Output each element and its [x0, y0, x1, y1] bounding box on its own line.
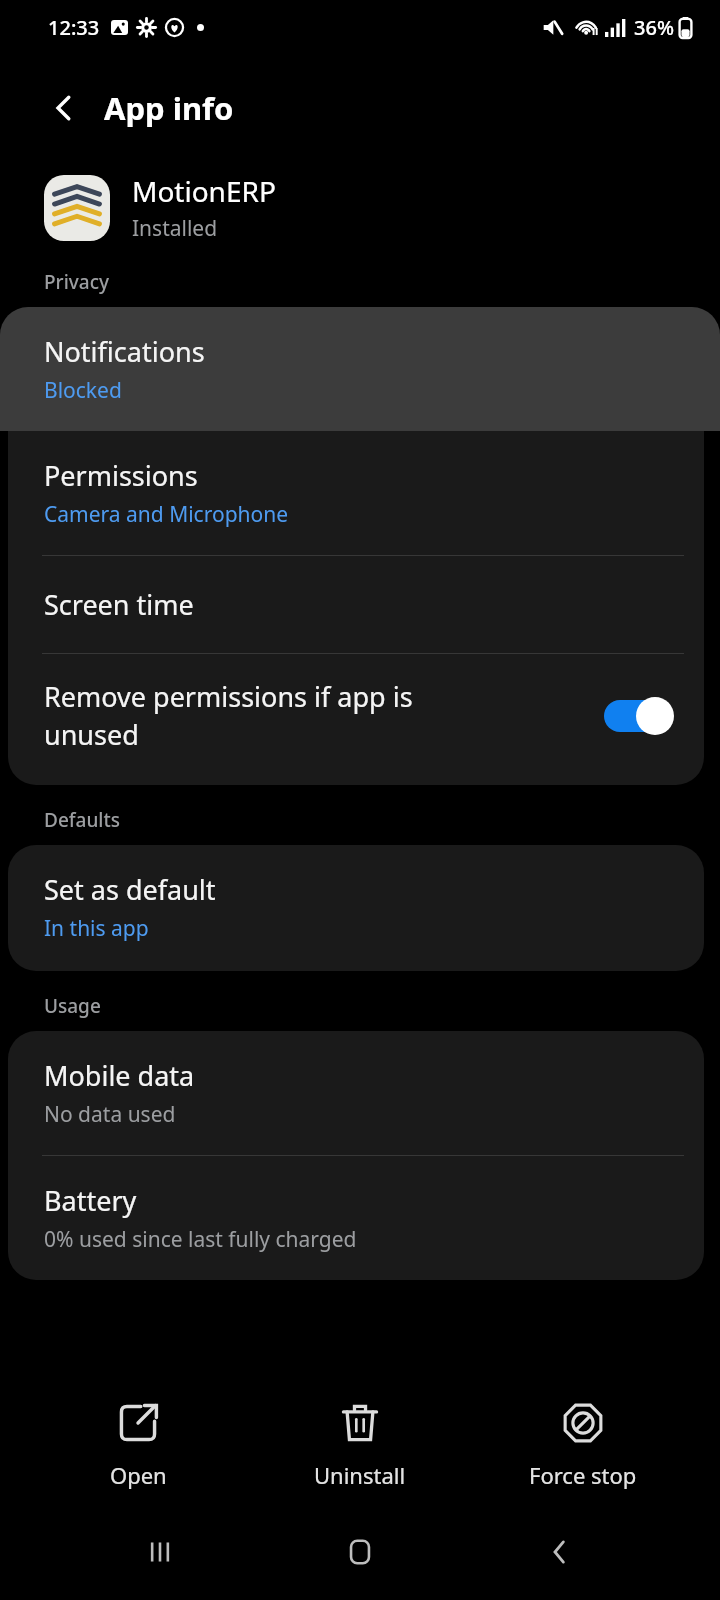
staticText: 36% [634, 14, 674, 41]
staticText: Uninstall [314, 1460, 406, 1490]
button[interactable]: Mobile data [8, 1031, 704, 1155]
staticText: Battery [44, 1182, 137, 1219]
button[interactable]: Back [520, 1512, 600, 1592]
button[interactable]: Notifications [0, 307, 720, 431]
staticText: App info [104, 87, 234, 129]
staticText: 0% used since last fully charged [44, 1225, 357, 1254]
staticText: Mobile data [44, 1057, 195, 1094]
staticText: In this app [44, 914, 149, 943]
staticText: Set as default [44, 871, 216, 908]
staticText: Screen time [44, 586, 194, 623]
staticText: Permissions [44, 457, 198, 494]
staticText: Remove permissions if app is unused [44, 678, 592, 753]
button[interactable]: Open [53, 1400, 223, 1490]
staticText: Blocked [44, 376, 122, 405]
button[interactable]: Set as default [8, 845, 704, 971]
staticText: Force stop [529, 1460, 637, 1490]
button[interactable]: Home [320, 1512, 400, 1592]
button[interactable]: Screen time [8, 556, 704, 653]
staticText: Privacy [44, 269, 109, 295]
button[interactable]: Battery [8, 1156, 704, 1280]
staticText: 12:33 [48, 14, 100, 41]
staticText: MotionERP [132, 172, 276, 210]
staticText: No data used [44, 1100, 176, 1129]
button[interactable]: Back [40, 84, 88, 132]
button[interactable]: Force stop [498, 1400, 668, 1490]
button[interactable]: Remove permissions if app is unused [8, 654, 704, 777]
button[interactable]: Permissions [8, 431, 704, 555]
button[interactable]: Recents [120, 1512, 200, 1592]
staticText: Open [110, 1460, 167, 1490]
staticText: Defaults [44, 807, 121, 833]
staticText: Usage [44, 993, 101, 1019]
button[interactable]: Uninstall [275, 1400, 445, 1490]
staticText: Installed [132, 214, 218, 243]
staticText: Camera and Microphone [44, 500, 289, 529]
staticText: Notifications [44, 333, 205, 370]
